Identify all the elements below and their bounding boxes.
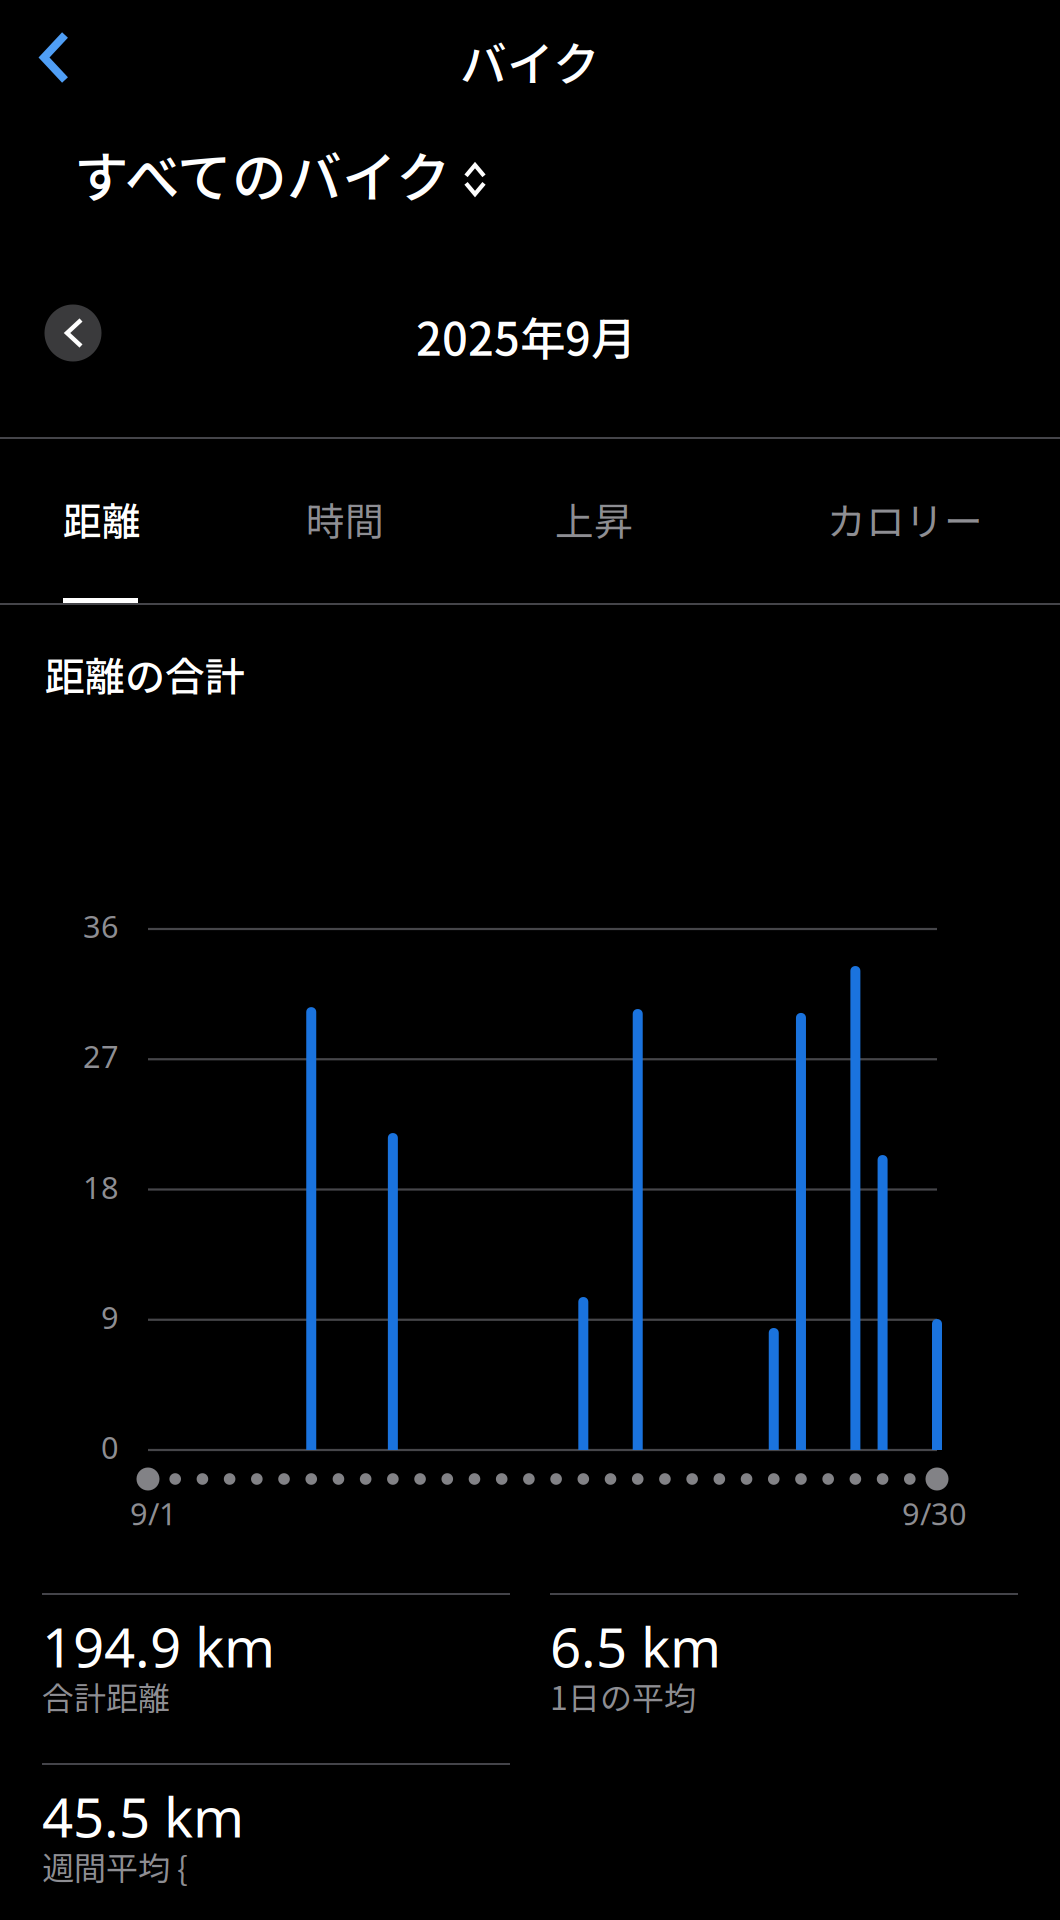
staticText: 合計距離	[42, 1673, 170, 1719]
button[interactable]: カロリー	[813, 443, 997, 595]
staticText: 27	[83, 1036, 119, 1076]
button[interactable]: 前の月	[33, 293, 113, 373]
staticText: 週間平均 {	[42, 1843, 188, 1889]
staticText: 18	[83, 1167, 119, 1207]
button[interactable]: すべてのバイク	[64, 124, 494, 223]
staticText: 6.5 km	[550, 1610, 721, 1683]
staticText: 9/1	[130, 1493, 177, 1534]
staticText: 0	[101, 1427, 119, 1467]
staticText: カロリー	[827, 491, 983, 547]
staticText: 9	[101, 1297, 119, 1337]
staticText: 45.5 km	[42, 1780, 244, 1853]
staticText: 距離の合計	[45, 645, 245, 703]
staticText: 1日の平均	[550, 1673, 696, 1719]
staticText: 2025年9月	[416, 303, 636, 369]
button[interactable]: 距離	[49, 443, 155, 595]
staticText: すべてのバイク	[74, 134, 451, 213]
button[interactable]: 戻る	[20, 11, 89, 104]
staticText: 距離	[63, 491, 141, 547]
button[interactable]: 上昇	[541, 443, 647, 595]
staticText: 上昇	[555, 491, 633, 547]
staticText: 194.9 km	[42, 1610, 275, 1683]
staticText: 36	[83, 906, 119, 946]
staticText: 9/30	[902, 1493, 967, 1534]
staticText: バイク	[460, 27, 600, 95]
staticText: 時間	[306, 491, 384, 547]
button[interactable]: 時間	[292, 443, 398, 595]
